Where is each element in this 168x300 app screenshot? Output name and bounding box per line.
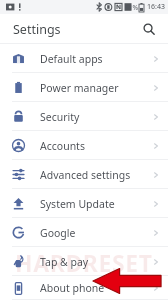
button[interactable]: Power manager (0, 73, 168, 102)
staticText: Security (40, 110, 80, 124)
button[interactable]: Search (138, 18, 160, 40)
staticText: 16:43 (147, 2, 165, 12)
button[interactable]: Security (0, 102, 168, 131)
staticText: Tap & pay (40, 255, 89, 269)
staticText: Default apps (40, 52, 103, 66)
staticText: Google (40, 226, 76, 240)
staticText: Accounts (40, 139, 85, 153)
staticText: Advanced settings (40, 168, 131, 182)
button[interactable]: Tap & pay (0, 247, 168, 276)
button[interactable]: System Update (0, 189, 168, 218)
button[interactable]: Advanced settings (0, 160, 168, 189)
staticText: About phone (40, 281, 105, 295)
staticText: HARDRESET (15, 247, 153, 278)
button[interactable]: Accounts (0, 131, 168, 160)
staticText: Settings (13, 21, 61, 38)
staticText: System Update (40, 197, 115, 211)
button[interactable]: Default apps (0, 44, 168, 73)
button[interactable]: About phone (0, 276, 168, 300)
button[interactable]: Google (0, 218, 168, 247)
staticText: 51% (125, 3, 138, 12)
staticText: Power manager (40, 81, 119, 95)
